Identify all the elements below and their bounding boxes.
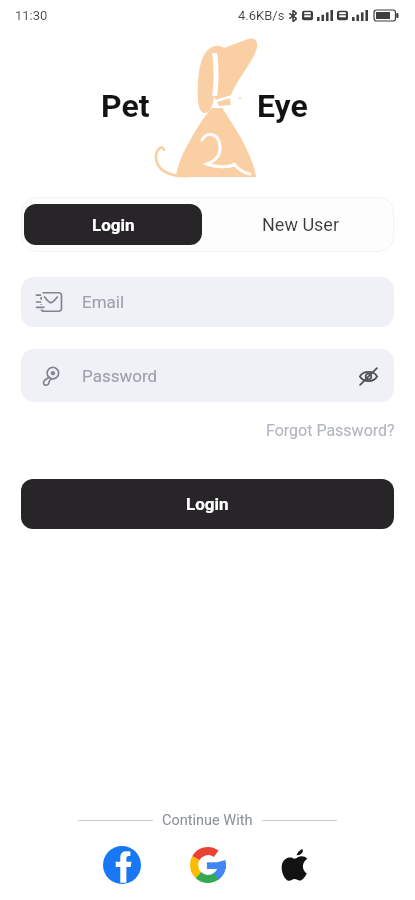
- staticText: 11:30: [15, 8, 48, 23]
- button[interactable]: Login: [24, 204, 202, 245]
- staticText: Continue With: [162, 812, 253, 829]
- staticText: 4.6KB/s: [238, 8, 285, 23]
- staticText: Pet: [101, 87, 150, 125]
- button[interactable]: Show password: [346, 354, 390, 398]
- staticText: Forgot Password?: [266, 421, 395, 440]
- button[interactable]: Password: [21, 349, 394, 402]
- button[interactable]: Login: [21, 479, 394, 529]
- staticText: New User: [262, 214, 339, 235]
- staticText: Password: [82, 366, 158, 386]
- button[interactable]: Continue with Apple: [270, 841, 318, 889]
- staticText: Eye: [257, 87, 308, 125]
- staticText: Email: [82, 292, 125, 312]
- staticText: Login: [186, 494, 229, 514]
- button[interactable]: Email: [21, 277, 394, 327]
- staticText: Login: [92, 215, 135, 235]
- button[interactable]: Continue with Facebook: [98, 841, 146, 889]
- button[interactable]: New User: [207, 197, 394, 252]
- button[interactable]: Forgot Password?: [246, 417, 415, 444]
- button[interactable]: Continue with Google: [184, 841, 232, 889]
